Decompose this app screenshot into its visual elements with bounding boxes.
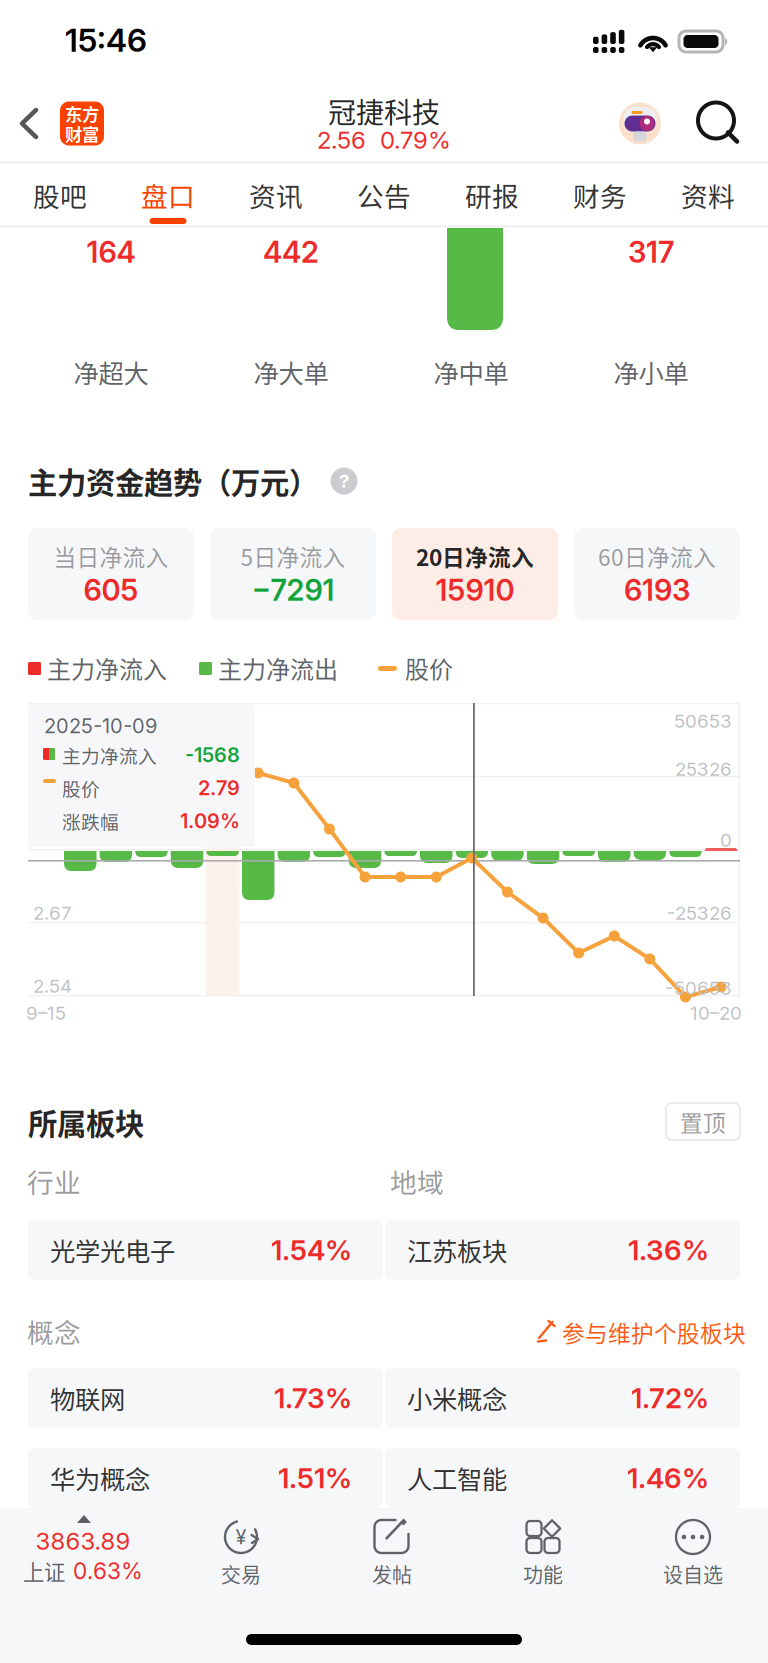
staticText: 净大单 [253, 354, 328, 390]
staticText: 物联网 [50, 1380, 125, 1416]
staticText: 2.79 [198, 776, 240, 800]
staticText: 25326 [675, 758, 732, 780]
staticText: 164 [86, 234, 135, 270]
staticText: 主力净流出 [218, 651, 338, 685]
staticText: 参与维护个股板块 [562, 1316, 746, 1348]
button[interactable]: 60日净流入 [574, 528, 740, 620]
staticText: 10–20 [690, 1002, 742, 1024]
staticText: 股吧 [33, 176, 87, 214]
staticText: 资料 [681, 176, 735, 214]
staticText: 1.46% [627, 1461, 709, 1495]
staticText: 涨跌幅 [62, 807, 119, 834]
staticText: 9–15 [26, 1002, 66, 1024]
staticText: -25326 [667, 902, 732, 924]
button[interactable]: 华为概念 [28, 1448, 383, 1508]
staticText: 资讯 [249, 176, 303, 214]
staticText: 发帖 [372, 1559, 412, 1588]
button[interactable]: 物联网 [28, 1368, 383, 1428]
staticText: 华为概念 [50, 1460, 150, 1496]
staticText: 1.51% [278, 1461, 352, 1495]
button[interactable]: 公告 [330, 163, 438, 227]
staticText: 5日净流入 [240, 540, 345, 572]
button[interactable]: 参与维护个股板块 [534, 1315, 746, 1349]
staticText: 2.67 [33, 902, 72, 924]
staticText: 605 [83, 572, 138, 608]
staticText: 财富 [65, 121, 99, 146]
button[interactable]: East Money home [53, 84, 111, 163]
staticText: 概念 [27, 1312, 81, 1350]
button[interactable]: 财务 [546, 163, 654, 227]
staticText: 2.80 [33, 783, 73, 805]
staticText: 15910 [435, 572, 514, 608]
staticText: 公告 [357, 176, 411, 214]
staticText: 0 [720, 829, 732, 851]
staticText: 60日净流入 [598, 540, 716, 572]
staticText: 净小单 [613, 354, 688, 390]
staticText: 1.36% [628, 1233, 709, 1267]
staticText: 主力净流入 [62, 741, 157, 768]
staticText: 442 [263, 234, 319, 270]
staticText: 1.54% [271, 1233, 352, 1267]
staticText: 研报 [465, 176, 519, 214]
staticText: 主力资金趋势（万元） [28, 460, 318, 502]
staticText: 股价 [405, 651, 453, 685]
staticText: 光学光电子 [50, 1232, 175, 1268]
staticText: ¥ [235, 1525, 246, 1549]
staticText: 317 [628, 234, 674, 270]
staticText: 所属板块 [28, 1101, 144, 1143]
button[interactable]: 功能 [468, 1508, 618, 1600]
button[interactable]: 盘口 [114, 163, 222, 227]
button[interactable]: 股吧 [6, 163, 114, 227]
staticText: −7291 [251, 572, 334, 608]
button[interactable]: 5日净流入 [210, 528, 376, 620]
staticText: 当日净流入 [53, 540, 168, 572]
staticText: 主力净流入 [47, 651, 167, 685]
staticText: 净中单 [433, 354, 508, 390]
button[interactable]: ¥ [166, 1508, 316, 1600]
staticText: 财务 [573, 176, 627, 214]
button[interactable]: Search [688, 84, 750, 163]
staticText: 交易 [221, 1559, 261, 1588]
button[interactable]: 光学光电子 [28, 1220, 383, 1280]
staticText: 功能 [523, 1559, 563, 1588]
staticText: 6193 [624, 572, 690, 608]
button[interactable]: 置顶 [666, 1103, 740, 1140]
button[interactable]: 人工智能 [385, 1448, 740, 1508]
button[interactable]: 发帖 [317, 1508, 467, 1600]
button[interactable]: 20日净流入 [392, 528, 558, 620]
staticText: 3863.89 [35, 1526, 130, 1555]
staticText: 行业 [27, 1162, 81, 1200]
staticText: 江苏板块 [407, 1232, 507, 1268]
button[interactable]: 3863.89 [0, 1508, 166, 1600]
staticText: 置顶 [680, 1105, 726, 1138]
staticText: 小米概念 [407, 1380, 507, 1416]
staticText: 1.73% [274, 1381, 352, 1415]
staticText: -1568 [185, 743, 240, 767]
staticText: -50653 [665, 977, 732, 999]
button[interactable]: Back [0, 84, 58, 163]
staticText: 冠捷科技 [328, 91, 440, 131]
button[interactable]: 当日净流入 [28, 528, 194, 620]
button[interactable]: 研报 [438, 163, 546, 227]
button[interactable]: 资讯 [222, 163, 330, 227]
staticText: 2025-10-09 [44, 714, 157, 738]
button[interactable]: 设自选 [618, 1508, 768, 1600]
staticText: 2.54 [33, 975, 72, 997]
staticText: 15:46 [65, 21, 147, 59]
staticText: 50653 [674, 710, 732, 732]
staticText: 盘口 [141, 176, 195, 214]
staticText: 设自选 [663, 1559, 723, 1588]
staticText: 1.09% [180, 809, 240, 833]
staticText: 地域 [390, 1162, 444, 1200]
button[interactable]: AI assistant [608, 84, 672, 163]
button[interactable]: 江苏板块 [385, 1220, 740, 1280]
staticText: ? [339, 470, 349, 492]
staticText: 20日净流入 [416, 540, 534, 572]
button[interactable]: 小米概念 [385, 1368, 740, 1428]
staticText: 0.63% [73, 1557, 143, 1585]
button[interactable]: 资料 [654, 163, 762, 227]
staticText: 上证 [23, 1556, 65, 1586]
button[interactable]: Help [330, 467, 358, 495]
staticText: 净超大 [73, 354, 148, 390]
staticText: 1.72% [631, 1381, 709, 1415]
